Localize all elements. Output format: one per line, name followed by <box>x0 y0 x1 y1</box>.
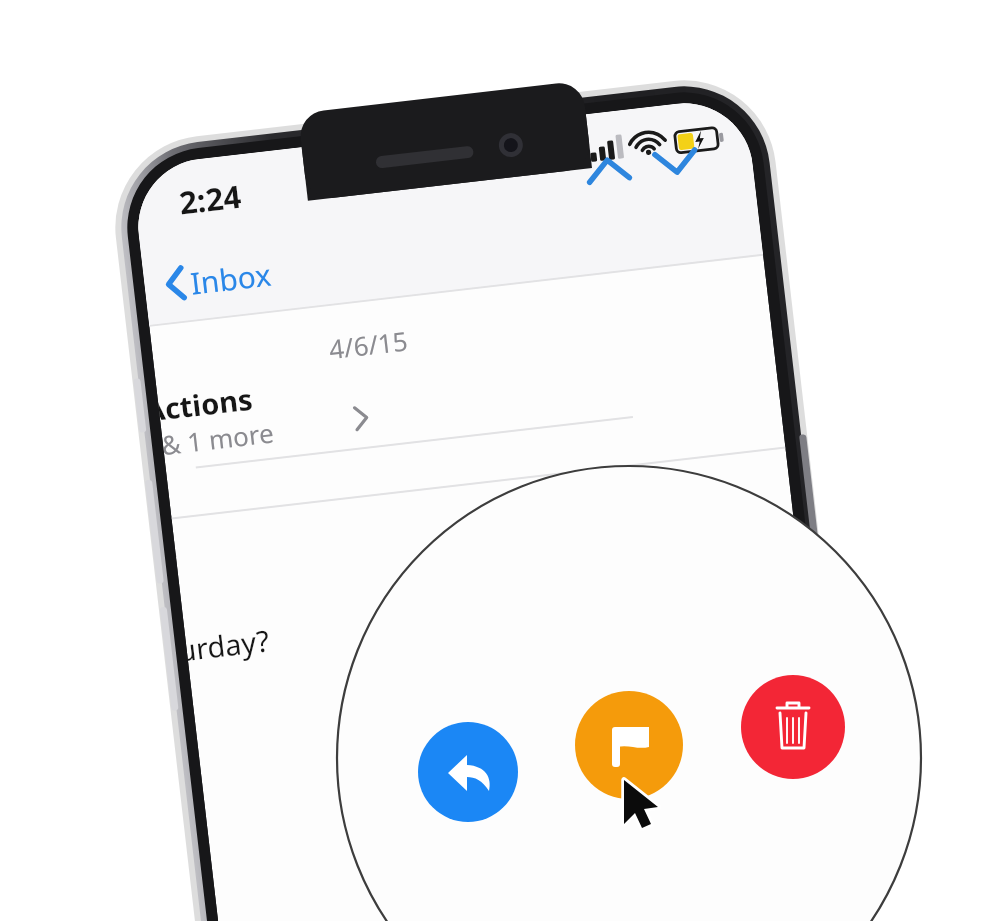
button[interactable]: Delete <box>739 673 847 781</box>
button[interactable]: Reply <box>416 720 520 824</box>
button[interactable]: Flag <box>573 689 685 801</box>
